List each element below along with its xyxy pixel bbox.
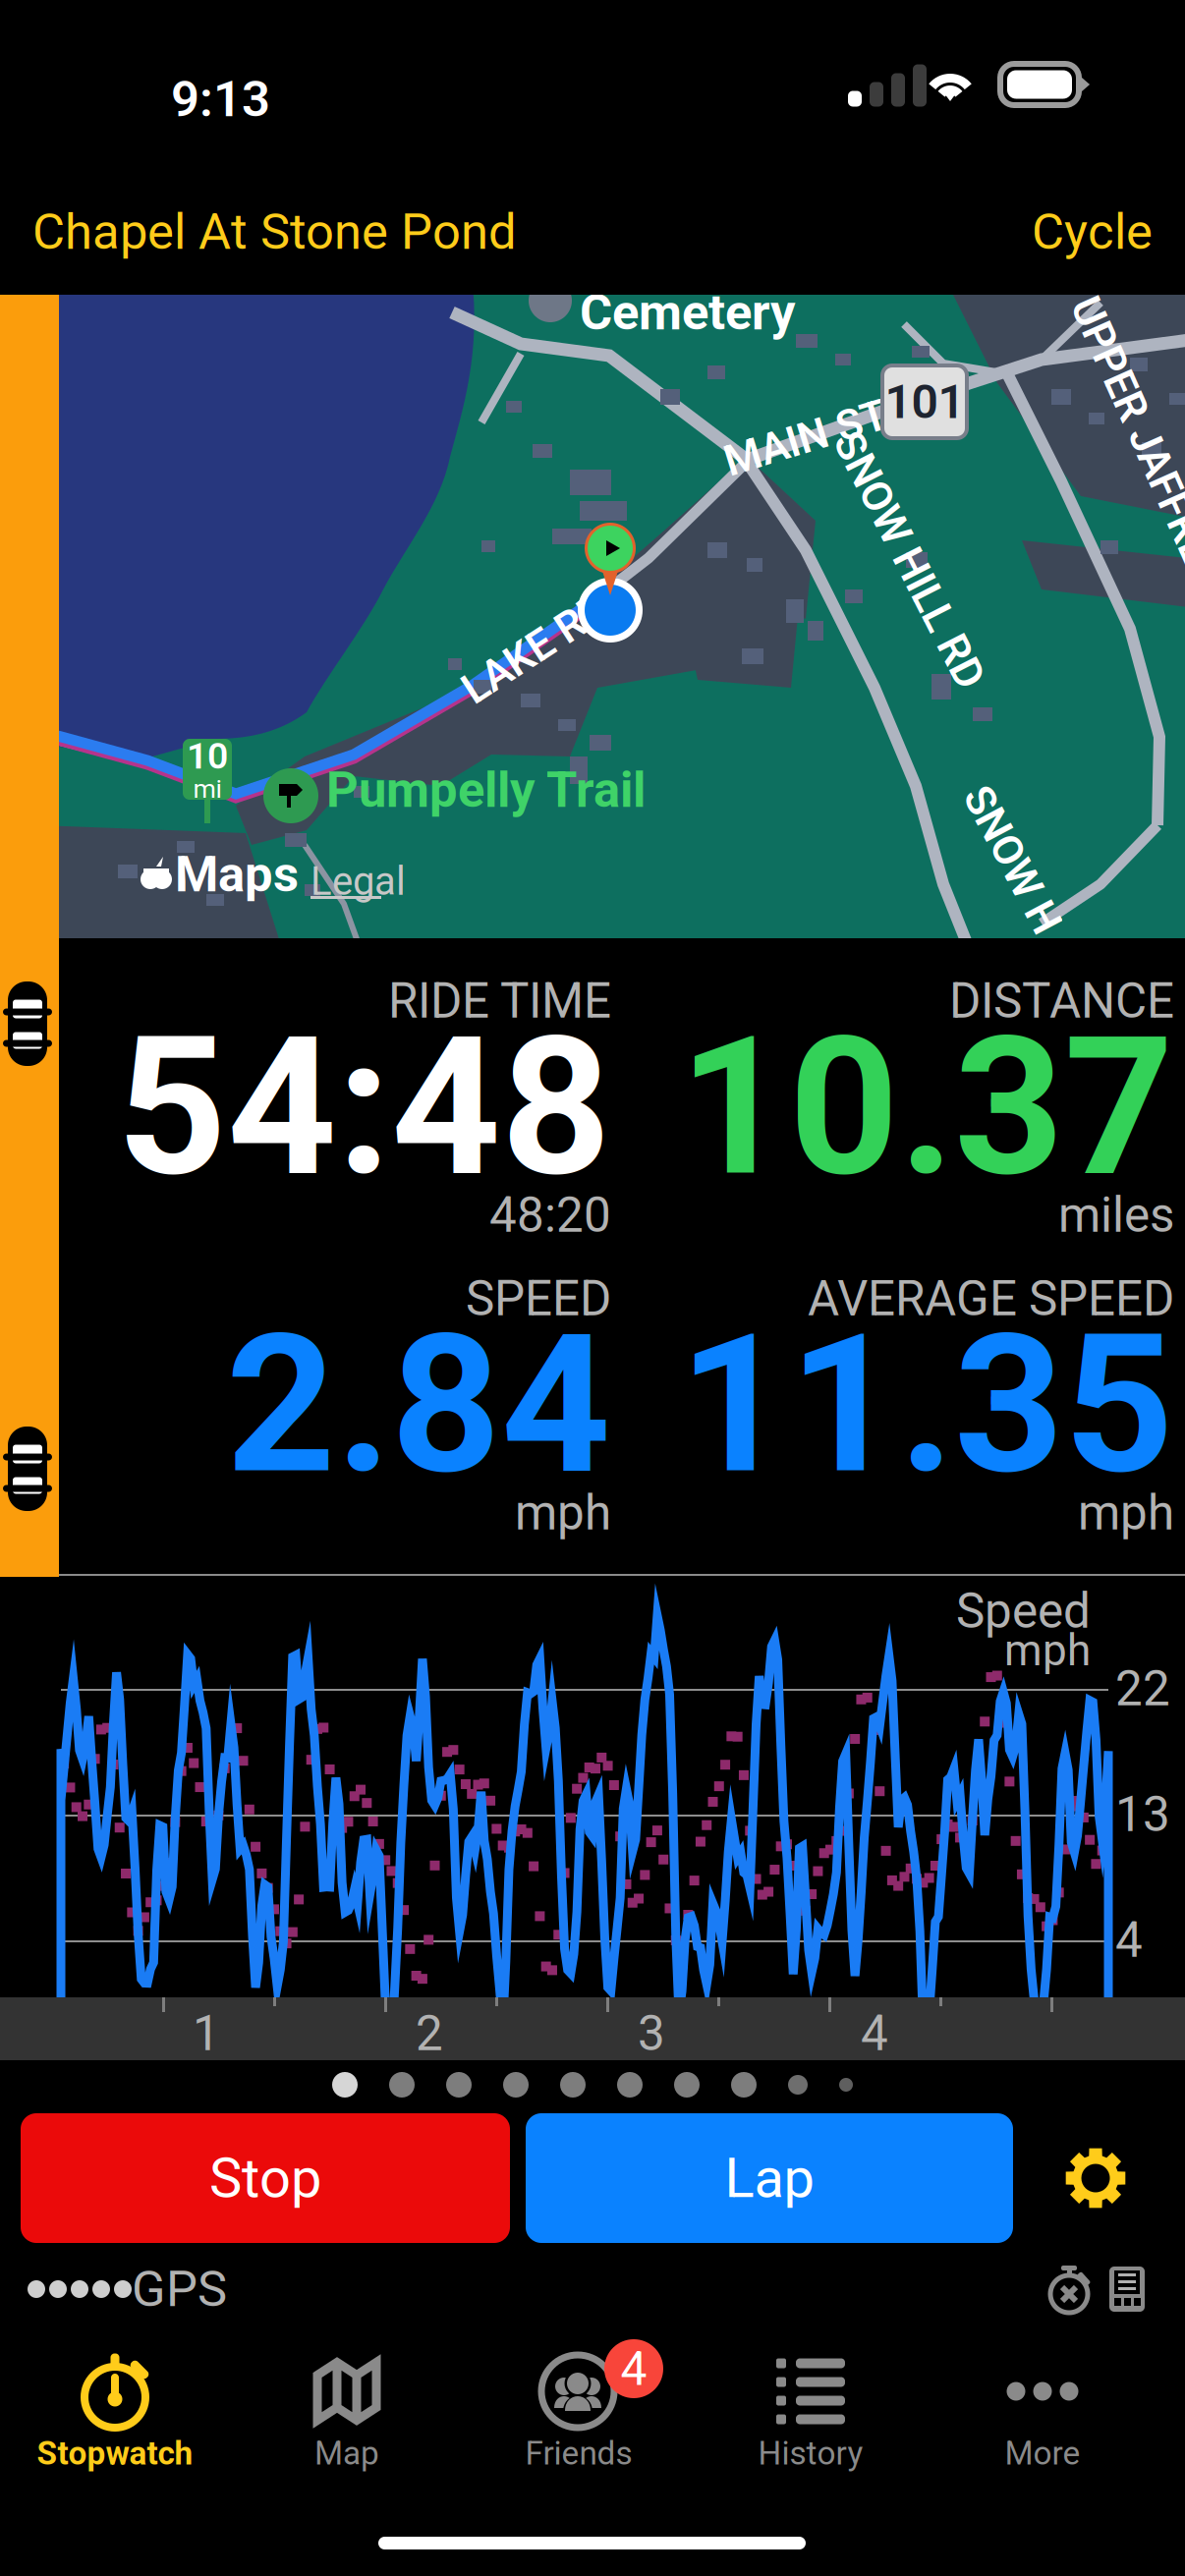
staticText: 13 bbox=[1115, 1786, 1170, 1843]
staticText: Legal bbox=[310, 858, 406, 904]
staticText: LAKE RD bbox=[453, 624, 618, 673]
button[interactable]: Calculator bbox=[1107, 2261, 1147, 2318]
staticText: RIDE TIME bbox=[388, 973, 611, 1030]
staticText: GPS bbox=[132, 2260, 227, 2318]
staticText: UPPER JAFFREY RD bbox=[971, 447, 1185, 496]
staticText: Maps bbox=[175, 845, 299, 904]
staticText: mph bbox=[1004, 1625, 1091, 1676]
staticText: 10 bbox=[187, 734, 228, 777]
staticText: mph bbox=[1078, 1485, 1174, 1541]
staticText: History bbox=[758, 2434, 863, 2472]
staticText: 1 bbox=[193, 2005, 220, 2062]
staticText: miles bbox=[1058, 1187, 1174, 1244]
staticText: 22 bbox=[1115, 1660, 1170, 1717]
staticText: mi bbox=[193, 773, 222, 804]
staticText: DISTANCE bbox=[949, 973, 1174, 1030]
staticText: 4 bbox=[1115, 1912, 1143, 1969]
staticText: 2.84 bbox=[226, 1293, 611, 1517]
button[interactable]: 4 bbox=[463, 2348, 695, 2480]
button[interactable]: Lap bbox=[526, 2113, 1013, 2243]
staticText: 3 bbox=[638, 2005, 665, 2062]
staticText: Lap bbox=[725, 2146, 814, 2210]
button[interactable]: Stop bbox=[21, 2113, 510, 2243]
button[interactable]: Stopwatch bbox=[0, 2348, 231, 2480]
button[interactable]: History bbox=[695, 2348, 927, 2480]
staticText: mph bbox=[515, 1485, 611, 1541]
staticText: Stop bbox=[209, 2146, 321, 2210]
staticText: AVERAGE SPEED bbox=[808, 1270, 1174, 1327]
staticText: 11.35 bbox=[679, 1293, 1174, 1517]
staticText: 101 bbox=[885, 374, 964, 429]
staticText: 48:20 bbox=[489, 1187, 611, 1244]
staticText: MAIN ST bbox=[722, 414, 890, 463]
staticText: 10.37 bbox=[679, 995, 1174, 1219]
staticText: 4 bbox=[861, 2005, 888, 2062]
staticText: SPEED bbox=[466, 1270, 611, 1327]
button[interactable]: Settings bbox=[1027, 2113, 1164, 2243]
staticText: Speed bbox=[956, 1583, 1091, 1640]
button[interactable]: Map bbox=[231, 2348, 463, 2480]
button[interactable]: More bbox=[927, 2348, 1158, 2480]
staticText: Pumpelly Trail bbox=[326, 761, 646, 819]
staticText: Stopwatch bbox=[37, 2434, 193, 2472]
staticText: SNOW H bbox=[932, 835, 1092, 884]
staticText: Cemetery bbox=[580, 283, 796, 342]
staticText: 2 bbox=[416, 2005, 443, 2062]
staticText: 9:13 bbox=[171, 70, 270, 128]
staticText: Friends bbox=[525, 2434, 632, 2472]
staticText: Chapel At Stone Pond bbox=[32, 203, 517, 261]
staticText: 4 bbox=[621, 2341, 647, 2396]
button[interactable]: Cycle bbox=[1032, 203, 1153, 261]
staticText: 54:48 bbox=[117, 995, 611, 1219]
staticText: SNOW HILL RD bbox=[768, 535, 1050, 585]
button[interactable]: Reset timer bbox=[1048, 2261, 1098, 2318]
staticText: Map bbox=[314, 2434, 379, 2472]
staticText: Cycle bbox=[1032, 203, 1153, 261]
button[interactable]: Chapel At Stone Pond bbox=[32, 203, 517, 261]
staticText: More bbox=[1005, 2434, 1080, 2472]
